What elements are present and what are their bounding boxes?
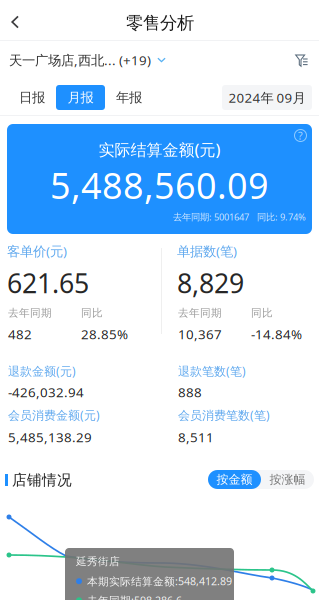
staticText: 店铺情况 xyxy=(12,471,72,489)
staticText: 5,485,138.29 xyxy=(8,428,92,446)
button[interactable]: 年报 xyxy=(105,85,153,110)
staticText: 退款笔数(笔) xyxy=(178,363,246,379)
staticText: 年报 xyxy=(116,89,142,106)
staticText: 10,367 xyxy=(178,325,222,343)
staticText: 退款金额(元) xyxy=(8,363,76,379)
button[interactable]: 按涨幅 xyxy=(261,470,314,489)
staticText: 本期实际结算金额:548,412.89 xyxy=(87,574,232,588)
button[interactable]: Filter xyxy=(293,52,310,69)
staticText: 去年同期 xyxy=(8,306,52,319)
staticText: 零售分析 xyxy=(126,12,194,34)
staticText: 按金额 xyxy=(216,472,252,487)
staticText: 482 xyxy=(8,325,32,343)
staticText: 延秀街店 xyxy=(76,555,120,568)
staticText: 去年同期:598,286.6 xyxy=(87,593,182,600)
staticText: 会员消费金额(元) xyxy=(8,407,100,423)
staticText: 单据数(笔) xyxy=(177,242,237,260)
staticText: 天一广场店,西北... (+19) xyxy=(9,51,151,69)
staticText: 28.85% xyxy=(81,325,128,343)
staticText: 同比 xyxy=(251,306,273,319)
staticText: 621.65 xyxy=(7,265,89,301)
staticText: 月报 xyxy=(67,89,93,106)
staticText: -14.84% xyxy=(251,325,302,343)
staticText: 同比 xyxy=(81,306,103,319)
staticText: 实际结算金额(元) xyxy=(98,139,220,160)
staticText: 客单价(元) xyxy=(7,242,67,260)
staticText: 888 xyxy=(178,383,202,401)
staticText: 去年同期: 5001647 同比: 9.74% xyxy=(173,211,306,223)
staticText: 5,488,560.09 xyxy=(50,161,269,209)
staticText: 8,511 xyxy=(178,428,214,446)
button[interactable]: 日报 xyxy=(8,85,56,110)
button[interactable]: 月报 xyxy=(56,85,105,110)
staticText: 去年同期 xyxy=(178,306,222,319)
button[interactable]: 按金额 xyxy=(208,470,261,489)
staticText: 2024年 09月 xyxy=(228,89,305,106)
staticText: 会员消费笔数(笔) xyxy=(178,407,270,423)
staticText: -426,032.94 xyxy=(8,383,84,401)
staticText: ? xyxy=(298,128,303,143)
button[interactable]: 2024年 09月 xyxy=(222,85,312,110)
staticText: 日报 xyxy=(19,89,45,106)
button[interactable]: Back xyxy=(2,9,28,35)
button[interactable]: 天一广场店,西北... (+19) xyxy=(9,51,169,69)
staticText: 8,829 xyxy=(177,265,244,301)
staticText: 按涨幅 xyxy=(269,472,305,487)
